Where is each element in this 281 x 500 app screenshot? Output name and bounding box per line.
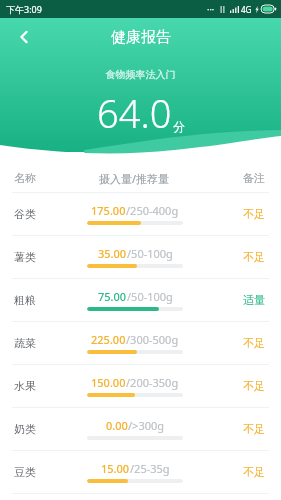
staticText: 不足 (243, 207, 265, 221)
staticText: /25-35g (130, 461, 170, 476)
staticText: 健康报告 (111, 28, 171, 47)
button[interactable]: 薯类 (0, 236, 281, 279)
staticText: 粗粮 (14, 293, 36, 307)
staticText: 奶类 (14, 422, 36, 436)
staticText: 水果 (14, 379, 36, 393)
staticText: 不足 (243, 465, 265, 479)
button[interactable]: 粗粮 (0, 279, 281, 322)
staticText: 15.00 (101, 461, 130, 476)
staticText: />300g (128, 418, 165, 433)
staticText: 下午3:09 (6, 3, 42, 15)
staticText: 35.00 (98, 246, 127, 261)
staticText: 0.00 (106, 418, 128, 433)
staticText: 薯类 (14, 250, 36, 264)
staticText: 适量 (243, 293, 265, 307)
staticText: /50-100g (127, 289, 173, 304)
staticText: /50-100g (127, 246, 173, 261)
staticText: 名称 (14, 171, 36, 185)
staticText: 摄入量/推荐量 (99, 171, 170, 186)
button[interactable]: 豆类 (0, 451, 281, 494)
staticText: ··· (207, 3, 215, 15)
staticText: 不足 (243, 422, 265, 436)
staticText: 150.00 (91, 375, 126, 390)
button[interactable]: 蔬菜 (0, 322, 281, 365)
staticText: 不足 (243, 250, 265, 264)
staticText: /200-350g (126, 375, 179, 390)
staticText: 75.00 (98, 289, 127, 304)
staticText: /250-400g (126, 203, 179, 218)
button[interactable]: Back (8, 21, 40, 53)
staticText: 4G (241, 4, 252, 15)
button[interactable]: 谷类 (0, 193, 281, 236)
staticText: 蔬菜 (14, 336, 36, 350)
staticText: 175.00 (91, 203, 126, 218)
staticText: 谷类 (14, 207, 36, 221)
button[interactable]: 水果 (0, 365, 281, 408)
staticText: /300-500g (126, 332, 179, 347)
staticText: 64.0 (97, 87, 172, 139)
staticText: 225.00 (91, 332, 126, 347)
staticText: 备注 (243, 171, 265, 185)
staticText: 食物频率法入门 (0, 68, 281, 81)
staticText: 不足 (243, 379, 265, 393)
staticText: 不足 (243, 336, 265, 350)
staticText: 分 (173, 119, 185, 134)
staticText: 豆类 (14, 465, 36, 479)
button[interactable]: 奶类 (0, 408, 281, 451)
